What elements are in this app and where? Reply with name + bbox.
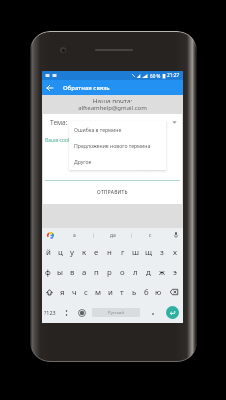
button[interactable]: х — [168, 242, 181, 262]
button[interactable]: Period — [144, 302, 162, 323]
button[interactable]: Backspace — [164, 282, 183, 302]
staticText: я — [60, 287, 65, 298]
staticText: 60 % — [150, 73, 161, 79]
staticText: с — [84, 287, 88, 298]
staticText: ы — [57, 267, 63, 278]
button[interactable]: л — [129, 262, 142, 282]
button[interactable]: ОТПРАВИТЬ — [43, 181, 182, 204]
button[interactable]: ю — [152, 282, 164, 302]
staticText: ?123 — [44, 309, 56, 316]
staticText: Русский — [108, 310, 125, 316]
button[interactable]: р — [103, 262, 116, 282]
staticText: Тема: — [50, 118, 68, 127]
staticText: а — [73, 232, 76, 239]
staticText: о — [120, 267, 125, 278]
staticText: ф — [45, 267, 51, 278]
staticText: Обратная связь — [63, 84, 110, 92]
button[interactable]: Select topic — [71, 114, 177, 130]
button[interactable]: ь — [128, 282, 140, 302]
button[interactable]: т — [116, 282, 128, 302]
button[interactable]: й — [42, 242, 54, 262]
staticText: а — [82, 267, 87, 278]
button[interactable]: и — [104, 282, 116, 302]
button[interactable]: Voice input — [169, 228, 183, 242]
staticText: в — [70, 267, 75, 278]
button[interactable]: с — [132, 228, 169, 242]
staticText: г — [121, 247, 125, 258]
staticText: Ошибка в термине — [74, 126, 122, 133]
staticText: щ — [145, 247, 152, 258]
button[interactable]: м — [92, 282, 104, 302]
staticText: Ваше сообщение — [45, 137, 88, 144]
staticText: и — [108, 287, 113, 298]
button[interactable]: к — [78, 242, 90, 262]
staticText: ю — [155, 287, 162, 298]
button[interactable]: Предложение нового термина — [69, 137, 166, 153]
staticText: т — [120, 287, 124, 298]
staticText: э — [173, 267, 177, 278]
staticText: ОТПРАВИТЬ — [97, 189, 128, 196]
staticText: Другое — [74, 158, 92, 165]
button[interactable]: да — [94, 228, 131, 242]
staticText: д — [146, 267, 151, 278]
button[interactable]: Google — [46, 231, 55, 240]
button[interactable]: щ — [142, 242, 155, 262]
staticText: л — [133, 267, 138, 278]
button[interactable]: э — [168, 262, 181, 282]
staticText: alfteamhelp@gmail.com — [42, 104, 183, 111]
staticText: 21:27 — [167, 72, 180, 79]
button[interactable]: я — [56, 282, 68, 302]
staticText: н — [107, 247, 112, 258]
button[interactable]: Русский — [92, 308, 140, 317]
staticText: ш — [132, 247, 139, 258]
button[interactable]: н — [103, 242, 116, 262]
button[interactable]: а — [78, 262, 90, 282]
button[interactable]: о — [116, 262, 129, 282]
button[interactable]: Change language — [75, 302, 88, 323]
staticText: з — [160, 247, 164, 258]
button[interactable]: б — [140, 282, 152, 302]
button[interactable]: с — [80, 282, 92, 302]
button[interactable]: в — [66, 262, 78, 282]
button[interactable]: Другое — [69, 153, 166, 169]
button[interactable]: Enter — [162, 302, 183, 323]
button[interactable]: ш — [129, 242, 142, 262]
staticText: Наша почта: — [42, 97, 183, 103]
staticText: да — [110, 232, 116, 239]
button[interactable]: Back — [42, 80, 58, 95]
staticText: ь — [132, 287, 137, 298]
button[interactable]: Ошибка в термине — [69, 121, 166, 137]
button[interactable]: д — [142, 262, 155, 282]
button[interactable]: п — [90, 262, 103, 282]
button[interactable]: г — [116, 242, 129, 262]
staticText: у — [70, 247, 74, 258]
staticText: е — [94, 247, 99, 258]
button[interactable]: з — [155, 242, 168, 262]
button[interactable]: Comma — [58, 302, 75, 323]
button[interactable]: у — [66, 242, 78, 262]
button[interactable]: ?123 — [42, 302, 58, 323]
staticText: с — [149, 232, 152, 239]
button[interactable]: а — [55, 228, 93, 242]
staticText: р — [107, 267, 112, 278]
button[interactable]: ы — [54, 262, 66, 282]
button[interactable]: е — [90, 242, 103, 262]
button[interactable]: ф — [42, 262, 54, 282]
staticText: ц — [58, 247, 63, 258]
staticText: м — [95, 287, 101, 298]
staticText: х — [173, 247, 177, 258]
button[interactable]: Shift — [42, 282, 56, 302]
staticText: ч — [72, 287, 77, 298]
button[interactable]: ч — [68, 282, 80, 302]
staticText: к — [82, 247, 87, 258]
staticText: п — [94, 267, 99, 278]
staticText: й — [46, 247, 51, 258]
staticText: Предложение нового термина — [74, 142, 151, 149]
staticText: ж — [159, 267, 165, 278]
staticText: б — [144, 287, 149, 298]
button[interactable]: ж — [155, 262, 168, 282]
button[interactable]: ц — [54, 242, 66, 262]
